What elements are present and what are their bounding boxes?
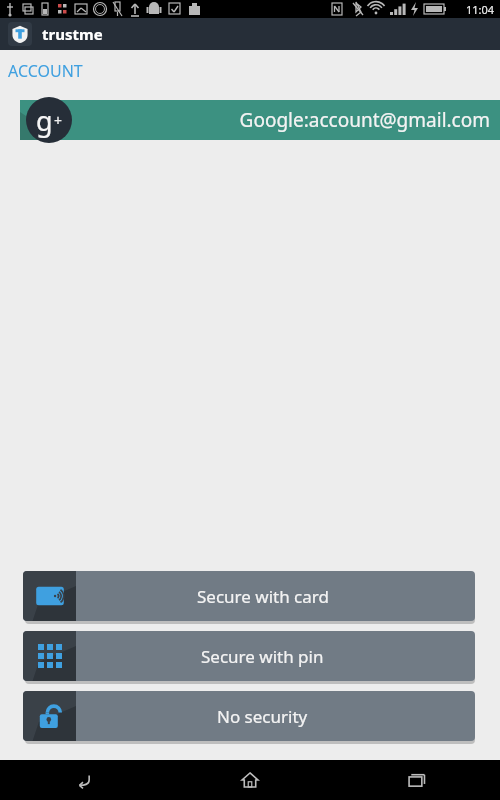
button[interactable]: Secure with pin	[23, 631, 475, 684]
staticText: ACCOUNT	[8, 60, 83, 82]
staticText: g	[36, 102, 53, 139]
button[interactable]: Secure with card	[23, 571, 475, 624]
staticText: Google:account@gmail.com	[0, 107, 490, 133]
button[interactable]: g	[0, 96, 500, 144]
staticText: Secure with card	[197, 585, 329, 608]
staticText: +	[54, 111, 63, 130]
button[interactable]: Back	[0, 760, 166, 800]
button[interactable]: trustme logo	[8, 22, 32, 46]
staticText: trustme	[42, 24, 103, 44]
staticText: 11:04	[466, 2, 495, 17]
staticText: Secure with pin	[201, 645, 324, 668]
button[interactable]: No security	[23, 691, 475, 744]
staticText: No security	[217, 705, 308, 728]
button[interactable]: Recent apps	[333, 760, 500, 800]
button[interactable]: Home	[166, 760, 333, 800]
